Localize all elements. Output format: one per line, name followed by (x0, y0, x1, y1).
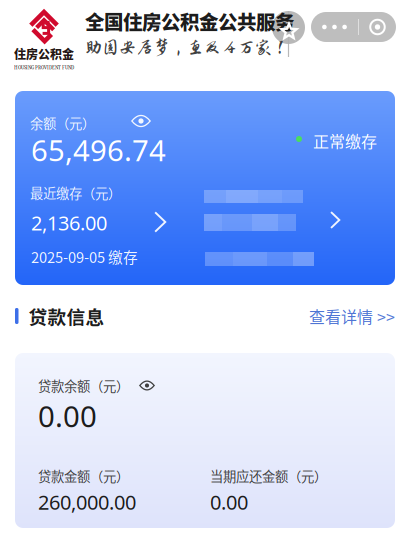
staticText: 查看详情 >> (309, 304, 395, 328)
staticText: 2,136.00 (31, 209, 107, 236)
staticText: 助圆安居梦，惠及千万家！ (85, 38, 289, 57)
staticText: 当期应还金额（元） (210, 466, 327, 485)
staticText: 260,000.00 (38, 488, 136, 515)
button[interactable]: Hide loan balance (139, 381, 155, 390)
staticText: 贷款余额（元） (38, 376, 129, 395)
staticText: 全国住房公积金公共服务 (85, 7, 294, 35)
staticText: 住房公积金 (14, 45, 74, 62)
staticText: 贷款信息 (28, 302, 104, 329)
button[interactable]: 查看详情 >> (309, 304, 395, 328)
staticText: 余额（元） (30, 113, 95, 132)
staticText: 贷款金额（元） (38, 466, 129, 485)
staticText: HOUSING PROVIDENT FUND (14, 64, 74, 71)
button[interactable]: Account detail (326, 211, 344, 229)
staticText: 2025-09-05 缴存 (31, 246, 138, 267)
staticText: 0.00 (210, 488, 248, 515)
staticText: 65,496.74 (31, 130, 166, 170)
button[interactable]: Hide balance (131, 115, 151, 127)
button[interactable]: More options (311, 12, 396, 42)
staticText: 正常缴存 (313, 129, 377, 152)
staticText: 最近缴存（元） (30, 183, 121, 202)
staticText: 0.00 (38, 396, 97, 436)
